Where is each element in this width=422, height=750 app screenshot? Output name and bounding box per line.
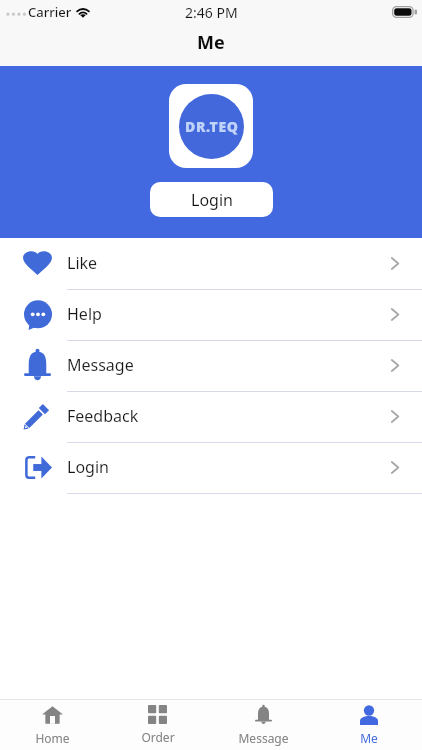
staticText: Carrier: [28, 3, 72, 21]
button[interactable]: Login: [150, 182, 273, 217]
staticText: 2:46 PM: [185, 3, 238, 22]
button[interactable]: Like: [0, 239, 422, 290]
staticText: Message: [238, 730, 289, 746]
staticText: Home: [35, 730, 70, 746]
button[interactable]: Profile avatar: [169, 84, 253, 168]
staticText: Login: [191, 189, 233, 211]
button[interactable]: Feedback: [0, 392, 422, 443]
staticText: DR.TEQ: [185, 117, 239, 136]
staticText: Me: [360, 730, 378, 746]
staticText: Login: [67, 456, 109, 478]
button[interactable]: Home: [0, 700, 105, 750]
button[interactable]: Message: [210, 700, 316, 750]
button[interactable]: Me: [316, 700, 422, 750]
button[interactable]: Login: [0, 443, 422, 494]
staticText: Message: [67, 354, 134, 376]
staticText: Feedback: [67, 405, 139, 427]
button[interactable]: Order: [105, 700, 210, 750]
staticText: Order: [141, 729, 175, 745]
staticText: Like: [67, 252, 98, 274]
button[interactable]: Help: [0, 290, 422, 341]
button[interactable]: Message: [0, 341, 422, 392]
staticText: Me: [197, 30, 225, 55]
staticText: Help: [67, 303, 102, 325]
